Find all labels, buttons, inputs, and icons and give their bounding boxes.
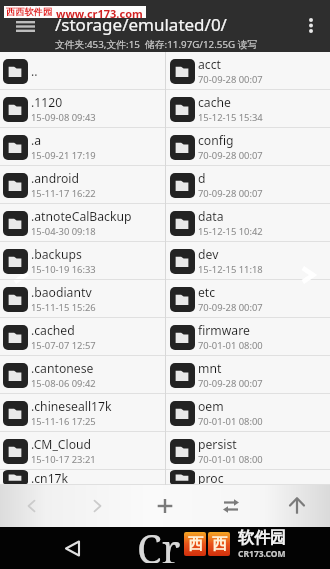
button[interactable]: firmware <box>166 318 330 356</box>
button[interactable]: .1120 <box>0 90 165 128</box>
staticText: 15-10-17 23:21 <box>31 453 96 466</box>
staticText: etc <box>198 284 216 301</box>
staticText: cache <box>198 94 231 111</box>
button[interactable]: .cached <box>0 318 165 356</box>
staticText: 15-12-15 10:42 <box>198 225 263 238</box>
staticText: 70-09-28 00:07 <box>198 377 263 390</box>
staticText: .android <box>31 170 79 187</box>
staticText: CR173.COM <box>238 548 286 560</box>
button[interactable]: etc <box>166 280 330 318</box>
button[interactable]: More options <box>298 12 324 38</box>
button[interactable]: .backups <box>0 242 165 280</box>
button[interactable]: Forward <box>66 485 132 527</box>
button[interactable]: mnt <box>166 356 330 394</box>
button[interactable]: .android <box>0 166 165 204</box>
staticText: acct <box>198 56 221 73</box>
button[interactable]: Up <box>264 485 330 527</box>
button[interactable]: acct <box>166 52 330 90</box>
button[interactable]: Transfer <box>198 485 264 527</box>
button[interactable]: Back <box>0 485 66 527</box>
staticText: .. <box>31 63 38 80</box>
staticText: firmware <box>198 322 250 339</box>
staticText: 文件夹:453,文件:15 储存:11.97G/12.55G 读写 <box>55 38 258 51</box>
button[interactable]: .. <box>0 52 165 90</box>
button[interactable]: config <box>166 128 330 166</box>
staticText: 15-07-07 12:57 <box>31 339 96 352</box>
staticText: 15-04-30 09:18 <box>31 225 96 238</box>
staticText: 70-01-01 08:00 <box>198 339 263 352</box>
staticText: 15-09-08 09:43 <box>31 111 96 124</box>
staticText: .backups <box>31 246 82 263</box>
staticText: data <box>198 208 224 225</box>
button[interactable]: cache <box>166 90 330 128</box>
staticText: .chineseall17k <box>31 398 112 415</box>
staticText: 15-11-16 17:25 <box>31 415 96 428</box>
button[interactable]: oem <box>166 394 330 432</box>
staticText: .baodiantv <box>31 284 92 301</box>
button[interactable]: .baodiantv <box>0 280 165 318</box>
staticText: 西西软件园 <box>6 6 52 18</box>
staticText: 70-09-28 00:07 <box>198 73 263 86</box>
staticText: dev <box>198 246 219 263</box>
staticText: 70-09-28 00:07 <box>198 149 263 162</box>
staticText: 15-12-15 15:34 <box>198 111 263 124</box>
button[interactable]: data <box>166 204 330 242</box>
staticText: .cantonese <box>31 360 94 377</box>
button[interactable]: .chineseall17k <box>0 394 165 432</box>
staticText: mnt <box>198 360 222 377</box>
button[interactable]: .cantonese <box>0 356 165 394</box>
button[interactable]: Menu <box>9 14 41 38</box>
staticText: 15-11-17 16:22 <box>31 187 96 200</box>
staticText: .cn17k <box>31 470 69 485</box>
staticText: 15-09-21 17:19 <box>31 149 96 162</box>
staticText: 70-09-28 00:07 <box>198 187 263 200</box>
staticText: .CM_Cloud <box>31 436 92 453</box>
staticText: 15-12-15 11:18 <box>198 263 263 276</box>
button[interactable]: dev <box>166 242 330 280</box>
button[interactable]: persist <box>166 432 330 470</box>
staticText: persist <box>198 436 237 453</box>
staticText: oem <box>198 398 224 415</box>
staticText: .cached <box>31 322 75 339</box>
button[interactable]: d <box>166 166 330 204</box>
staticText: 西 <box>212 535 227 554</box>
staticText: .a <box>31 132 42 149</box>
staticText: 70-01-01 08:00 <box>198 453 263 466</box>
staticText: /storage/emulated/0/ <box>55 13 227 36</box>
button[interactable]: Back <box>57 536 87 560</box>
staticText: Cr <box>137 521 181 563</box>
staticText: 西 <box>188 535 203 554</box>
staticText: .1120 <box>31 94 63 111</box>
staticText: proc <box>198 470 224 485</box>
button[interactable]: .CM_Cloud <box>0 432 165 470</box>
button[interactable]: .a <box>0 128 165 166</box>
staticText: d <box>198 170 206 187</box>
button[interactable]: proc <box>166 470 330 485</box>
staticText: www.cr173.com <box>56 6 143 18</box>
button[interactable]: .atnoteCalBackup <box>0 204 165 242</box>
staticText: 15-11-15 15:26 <box>31 301 96 314</box>
staticText: 15-10-19 16:33 <box>31 263 96 276</box>
staticText: 70-01-01 08:00 <box>198 415 263 428</box>
button[interactable]: New <box>132 485 198 527</box>
staticText: 15-08-06 09:42 <box>31 377 96 390</box>
staticText: .atnoteCalBackup <box>31 208 132 225</box>
button[interactable]: .cn17k <box>0 470 165 485</box>
staticText: 软件园 <box>238 528 286 548</box>
staticText: 70-09-28 00:07 <box>198 301 263 314</box>
staticText: config <box>198 132 234 149</box>
